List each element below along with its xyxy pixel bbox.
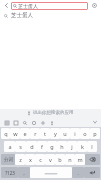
staticText: b (58, 156, 62, 163)
staticText: t (44, 130, 46, 137)
staticText: g (50, 143, 54, 150)
staticText: 说出你想搜索的应用 (33, 110, 74, 116)
staticText: x (29, 156, 32, 163)
button[interactable]: Theme (11, 118, 20, 127)
staticText: z (19, 156, 22, 163)
button[interactable]: a (4, 141, 15, 152)
button[interactable]: q (1, 128, 10, 139)
staticText: j (71, 143, 73, 150)
button[interactable]: s (15, 141, 26, 152)
button[interactable]: j (67, 141, 77, 152)
button[interactable]: Enter (84, 167, 100, 178)
button[interactable]: Move cursor (38, 118, 47, 127)
staticText: h (60, 143, 64, 150)
button[interactable]: f (37, 141, 47, 152)
button[interactable]: i (70, 128, 80, 139)
button[interactable]: 芝士蛋人 (13, 2, 86, 10)
staticText: i (74, 130, 76, 137)
staticText: f (41, 143, 43, 150)
staticText: c (39, 156, 42, 163)
button[interactable]: r (30, 128, 40, 139)
staticText: 芝士蛋人 (11, 12, 33, 19)
button[interactable]: Search (20, 118, 29, 127)
button[interactable]: w (10, 128, 20, 139)
button[interactable]: b (55, 154, 65, 165)
button[interactable]: k (77, 141, 87, 152)
staticText: p (93, 130, 97, 137)
staticText: l (91, 143, 93, 150)
staticText: r (34, 130, 37, 137)
staticText: n (68, 156, 72, 163)
button[interactable]: e (20, 128, 30, 139)
button[interactable]: h (57, 141, 67, 152)
button[interactable]: Keyboard layout (2, 118, 11, 127)
staticText: , (23, 170, 25, 176)
button[interactable]: c (35, 154, 45, 165)
staticText: u (63, 130, 67, 137)
button[interactable]: Comma (18, 167, 30, 178)
button[interactable]: y (50, 128, 60, 139)
staticText: d (30, 143, 34, 150)
staticText: w (13, 130, 18, 137)
button[interactable]: Space (30, 167, 72, 178)
staticText: 分词 (4, 157, 13, 163)
button[interactable]: l (87, 141, 97, 152)
button[interactable]: Segment (1, 154, 15, 165)
staticText: . (77, 170, 79, 176)
button[interactable]: Back (2, 1, 11, 10)
button[interactable]: o (80, 128, 90, 139)
button[interactable]: x (25, 154, 35, 165)
button[interactable]: Delete (85, 154, 100, 165)
staticText: k (81, 143, 84, 150)
staticText: q (4, 130, 8, 137)
button[interactable]: 芝士蛋人 (0, 11, 101, 20)
button[interactable]: v (45, 154, 55, 165)
staticText: m (77, 156, 83, 163)
button[interactable]: 说出你想搜索的应用 (0, 109, 101, 117)
button[interactable]: t (40, 128, 50, 139)
button[interactable]: g (47, 141, 57, 152)
button[interactable]: Collapse (91, 118, 99, 126)
staticText: ?123 (5, 170, 15, 176)
staticText: y (54, 130, 57, 137)
button[interactable]: n (65, 154, 75, 165)
staticText: e (23, 130, 27, 137)
button[interactable]: Voice input (47, 118, 56, 127)
button[interactable]: Emoji (29, 118, 38, 127)
staticText: v (49, 156, 52, 163)
staticText: 芝士蛋人 (18, 3, 38, 9)
button[interactable]: z (15, 154, 25, 165)
button[interactable]: Symbols (1, 167, 18, 178)
staticText: o (83, 130, 87, 137)
button[interactable]: m (75, 154, 85, 165)
button[interactable]: u (60, 128, 70, 139)
button[interactable]: p (90, 128, 100, 139)
button[interactable]: Settings (90, 1, 99, 10)
staticText: s (19, 143, 22, 150)
staticText: a (8, 143, 12, 150)
button[interactable]: d (26, 141, 37, 152)
